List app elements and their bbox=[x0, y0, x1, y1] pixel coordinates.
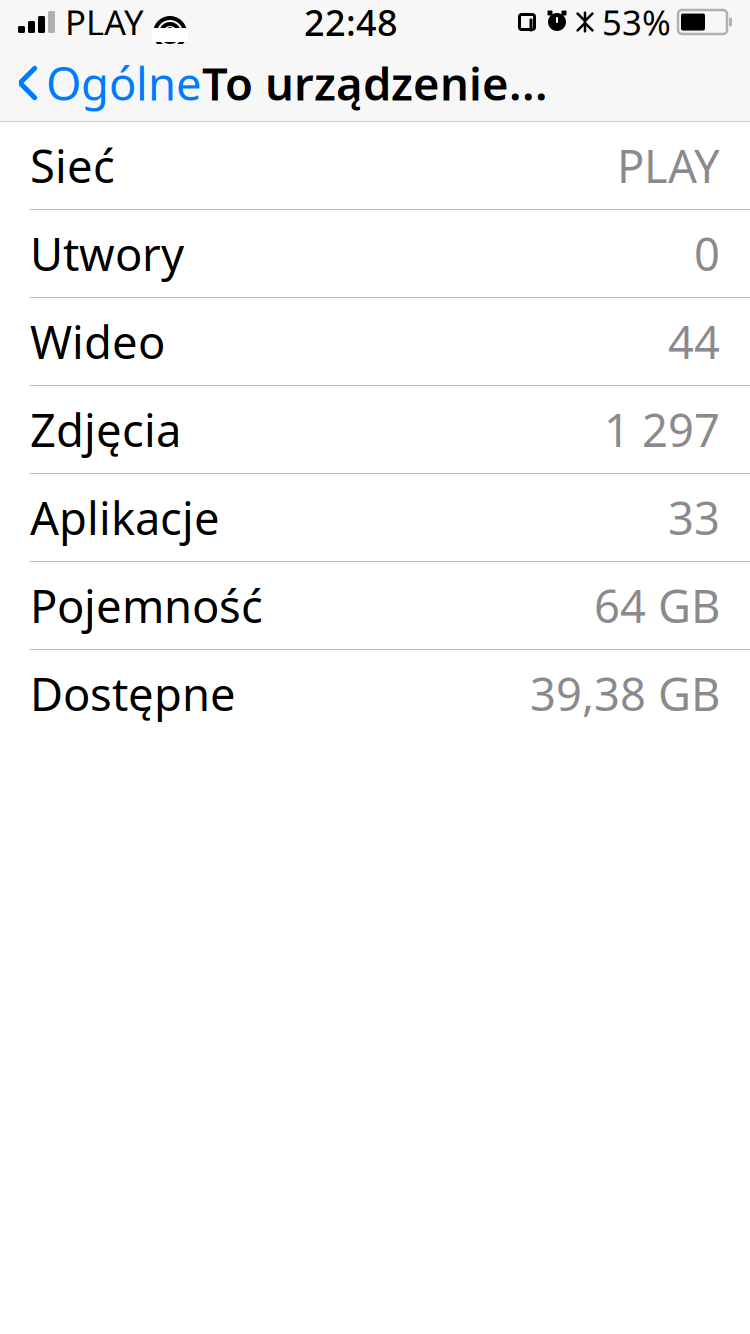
staticText: Sieć bbox=[30, 135, 115, 196]
button[interactable]: Sieć bbox=[0, 122, 750, 210]
button[interactable]: Wideo bbox=[0, 298, 750, 386]
staticText: Pojemność bbox=[30, 575, 263, 636]
staticText: 33 bbox=[668, 487, 720, 548]
staticText: PLAY bbox=[617, 135, 720, 196]
button[interactable]: Utwory bbox=[0, 210, 750, 298]
staticText: 1 297 bbox=[604, 399, 720, 460]
staticText: 44 bbox=[668, 311, 720, 372]
button[interactable]: Aplikacje bbox=[0, 474, 750, 562]
staticText: 0 bbox=[694, 223, 720, 284]
staticText: Ogólne bbox=[46, 53, 202, 113]
staticText: 39,38 GB bbox=[530, 663, 720, 724]
button[interactable]: Ogólne bbox=[0, 44, 220, 122]
staticText: To urządzenie... bbox=[202, 53, 548, 113]
staticText: Wideo bbox=[30, 311, 165, 372]
staticText: 53% bbox=[602, 0, 671, 45]
button[interactable]: Dostępne bbox=[0, 650, 750, 738]
button[interactable]: Zdjęcia bbox=[0, 386, 750, 474]
button[interactable]: Pojemność bbox=[0, 562, 750, 650]
staticText: Aplikacje bbox=[30, 487, 220, 548]
staticText: Zdjęcia bbox=[30, 399, 181, 460]
staticText: 64 GB bbox=[594, 575, 720, 636]
staticText: Dostępne bbox=[30, 663, 236, 724]
staticText: Utwory bbox=[30, 223, 184, 284]
staticText: PLAY bbox=[65, 0, 144, 45]
staticText: 22:48 bbox=[304, 0, 398, 46]
